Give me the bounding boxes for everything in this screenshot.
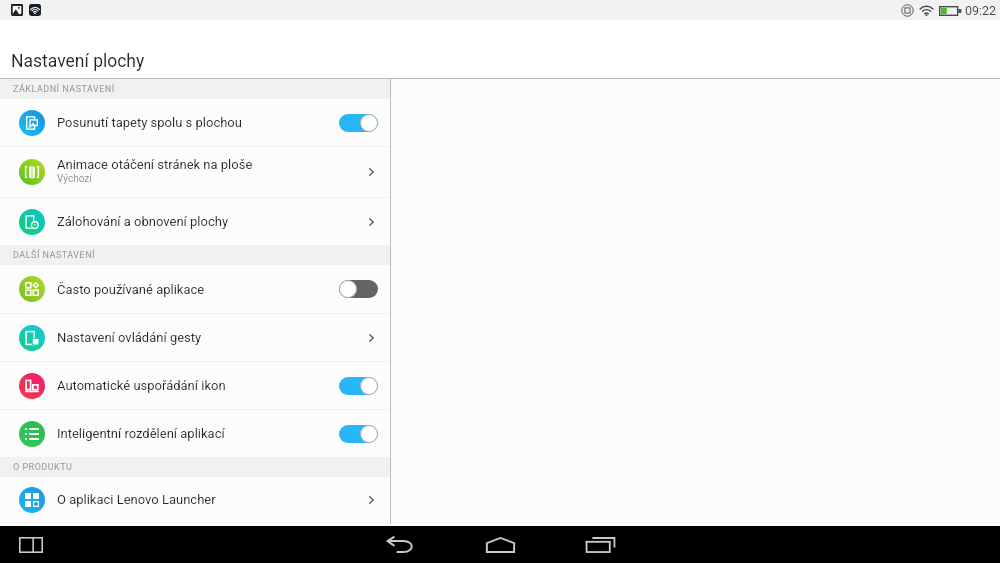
button[interactable]: Back [368, 526, 432, 563]
staticText: Zálohování a obnovení plochy [57, 214, 229, 229]
staticText: Posunutí tapety spolu s plochou [57, 115, 242, 130]
staticText: ZÁKLADNÍ NASTAVENÍ [13, 84, 115, 95]
button[interactable]: Enabled [339, 425, 378, 443]
staticText: O PRODUKTU [13, 462, 73, 473]
button[interactable]: Zálohování a obnovení plochy [0, 198, 390, 245]
staticText: Animace otáčení stránek na ploše [57, 157, 253, 172]
staticText: Automatické uspořádání ikon [57, 378, 226, 393]
button[interactable]: Home [468, 526, 532, 563]
button[interactable]: Automatické uspořádání ikon [0, 362, 390, 409]
button[interactable]: Často používané aplikace [0, 265, 390, 313]
staticText: Výchozí [57, 173, 92, 185]
staticText: Nastavení plochy [11, 51, 145, 72]
button[interactable]: Enabled [339, 114, 378, 132]
button[interactable]: Split screen [11, 526, 51, 563]
button[interactable]: Inteligentní rozdělení aplikací [0, 410, 390, 457]
button[interactable]: Disabled [339, 280, 378, 298]
staticText: DALŠÍ NASTAVENÍ [13, 250, 95, 261]
button[interactable]: Animace otáčení stránek na ploše [0, 147, 390, 197]
button[interactable]: Enabled [339, 377, 378, 395]
staticText: Inteligentní rozdělení aplikací [57, 426, 225, 441]
button[interactable]: Recent apps [568, 526, 632, 563]
button[interactable]: Posunutí tapety spolu s plochou [0, 99, 390, 146]
staticText: O aplikaci Lenovo Launcher [57, 492, 216, 507]
staticText: 09:22 [965, 3, 997, 18]
button[interactable]: O aplikaci Lenovo Launcher [0, 477, 390, 522]
button[interactable]: Nastavení ovládání gesty [0, 314, 390, 361]
staticText: Nastavení ovládání gesty [57, 330, 202, 345]
staticText: Často používané aplikace [57, 282, 205, 297]
